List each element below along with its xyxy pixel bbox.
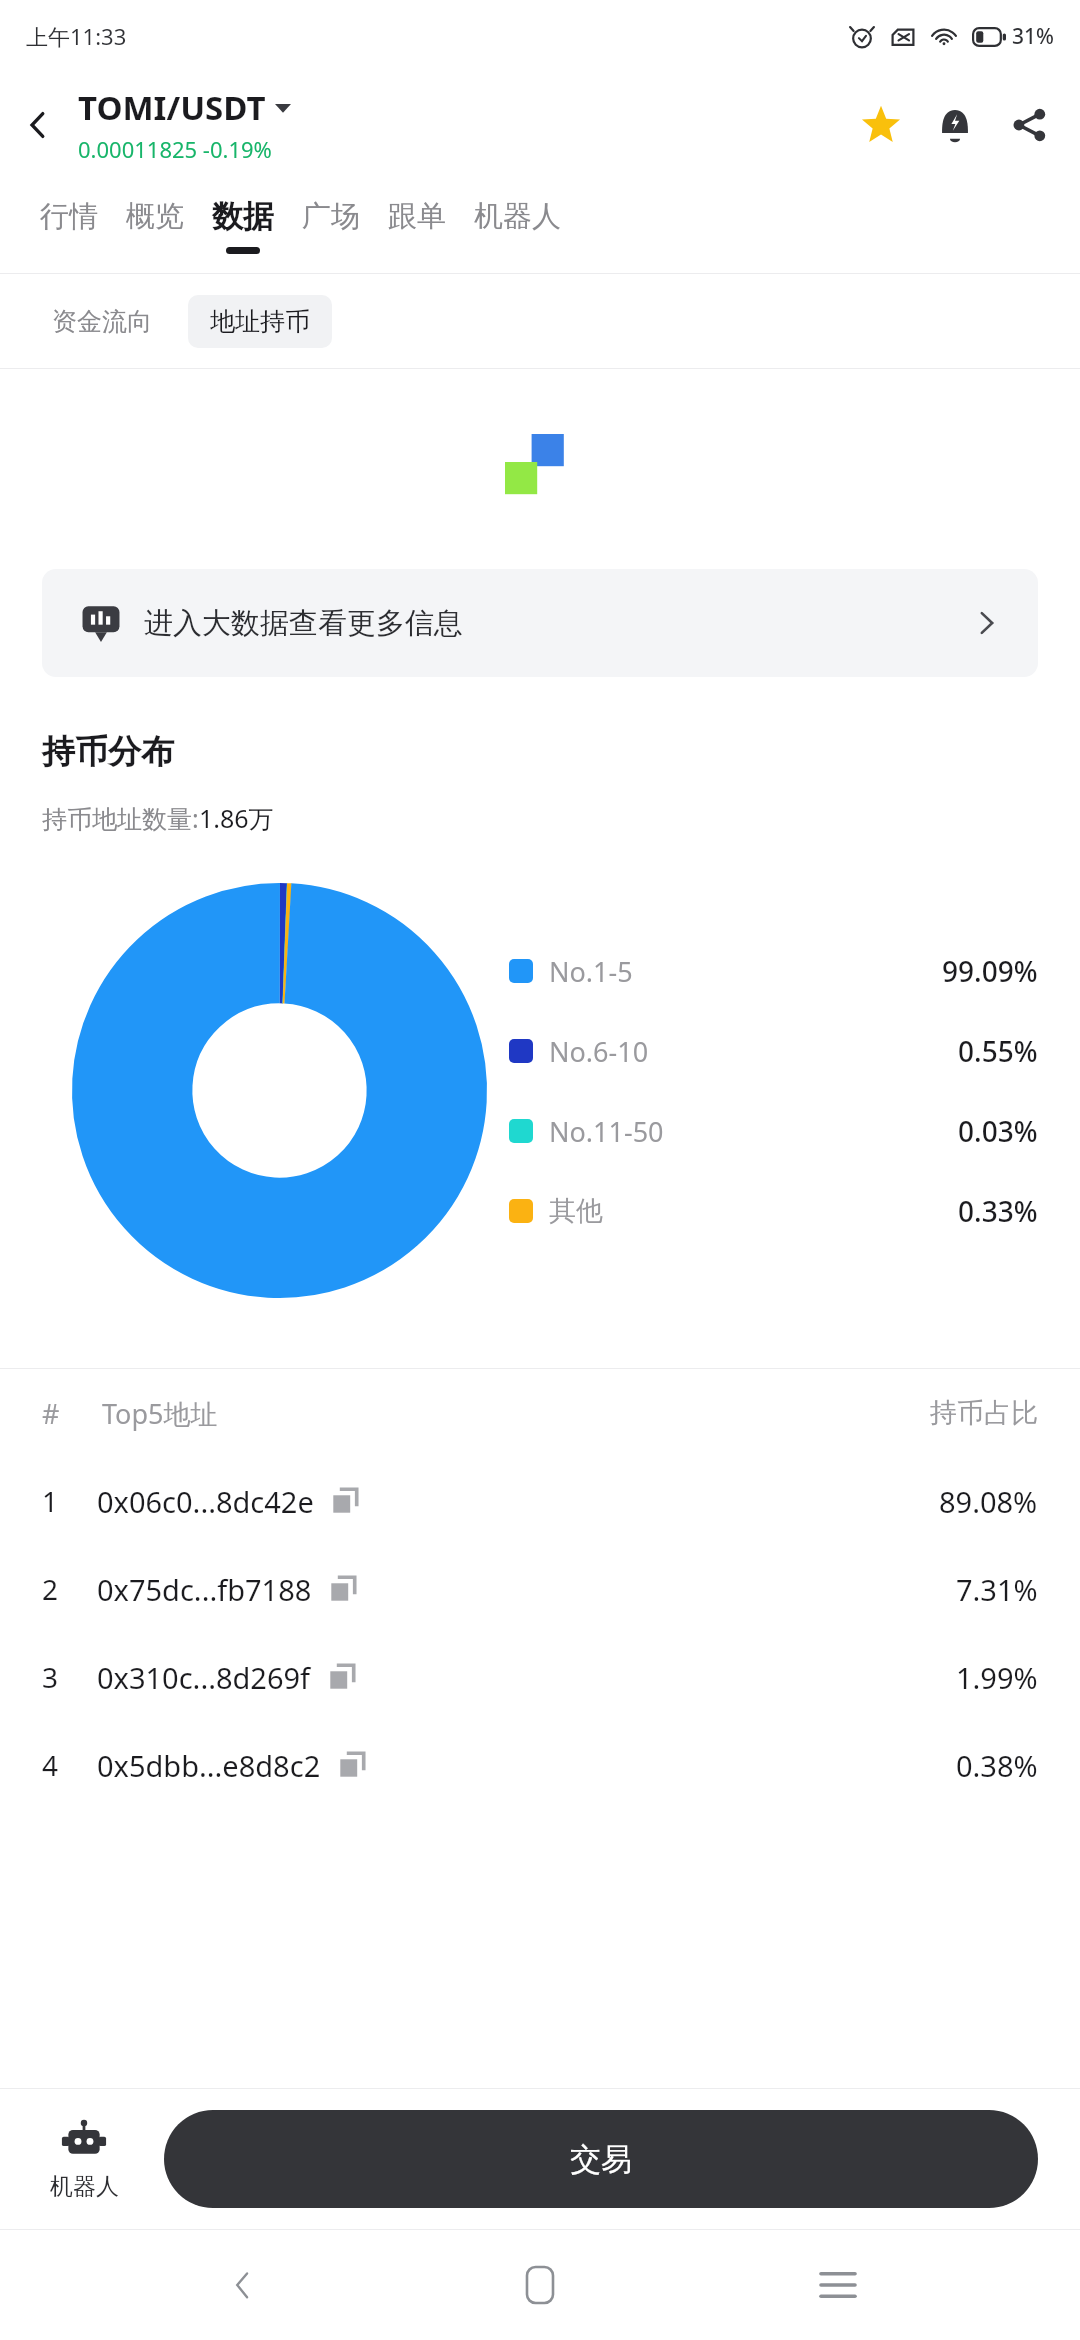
button[interactable]: Back [0,87,76,163]
staticText: No.6-10 [549,1033,649,1070]
staticText: 4 [42,1746,59,1784]
button[interactable]: 数据 [198,177,288,273]
staticText: 99.09% [942,952,1038,990]
button[interactable]: 1 [0,1457,1080,1545]
staticText: 89.08% [939,1482,1038,1521]
staticText: 2 [42,1570,59,1608]
button[interactable]: Favorite [844,88,918,162]
staticText: 0.03% [958,1112,1038,1150]
staticText: 行情 [40,198,98,235]
staticText: 0x310c...8d269f [97,1658,311,1697]
button[interactable]: 概览 [112,177,198,273]
staticText: 机器人 [474,198,561,235]
button[interactable]: Copy address [328,1484,362,1518]
button[interactable]: Price alert [918,88,992,162]
staticText: 0x06c0...8dc42e [97,1482,314,1521]
staticText: 广场 [302,198,360,235]
button[interactable]: 交易 [164,2110,1038,2208]
staticText: No.11-50 [549,1113,664,1150]
staticText: 资金流向 [52,306,152,337]
staticText: 1.99% [956,1658,1038,1697]
staticText: 7.31% [956,1570,1038,1609]
button[interactable]: 跟单 [374,177,460,273]
button[interactable]: Copy address [335,1748,369,1782]
button[interactable]: 3 [0,1633,1080,1721]
button[interactable]: 4 [0,1721,1080,1809]
button[interactable]: 资金流向 [42,296,162,347]
button[interactable]: Copy address [326,1572,360,1606]
button[interactable]: 广场 [288,177,374,273]
staticText: TOMI/USDT [78,85,266,130]
staticText: 上午11:33 [26,21,127,51]
button[interactable]: 机器人 [26,2089,142,2229]
button[interactable]: 2 [0,1545,1080,1633]
staticText: 持币分布 [42,731,174,773]
staticText: 0x75dc...fb7188 [97,1570,312,1609]
staticText: 0.33% [958,1192,1038,1230]
staticText: 其他 [549,1194,603,1228]
button[interactable]: Copy address [325,1660,359,1694]
button[interactable]: 行情 [26,177,112,273]
button[interactable]: 机器人 [460,177,575,273]
button[interactable]: Share [992,88,1066,162]
staticText: 0x5dbb...e8d8c2 [97,1746,321,1785]
button[interactable]: Home [485,2230,595,2340]
staticText: 0.38% [956,1746,1038,1785]
staticText: 机器人 [50,2172,119,2201]
staticText: 3 [42,1658,59,1696]
button[interactable]: Back [188,2230,298,2340]
staticText: 1.86万 [199,801,274,835]
staticText: 0.55% [958,1032,1038,1070]
staticText: # [42,1395,60,1432]
button[interactable]: 进入大数据查看更多信息 [42,569,1038,677]
staticText: 进入大数据查看更多信息 [144,605,463,642]
staticText: 0.00011825 -0.19% [78,134,272,164]
staticText: 数据 [212,197,274,236]
staticText: Top5地址 [102,1395,218,1432]
staticText: 持币占比 [930,1396,1038,1430]
staticText: No.1-5 [549,953,633,990]
button[interactable]: 地址持币 [188,295,332,348]
button[interactable]: Recents [783,2230,893,2340]
staticText: 交易 [570,2140,632,2179]
staticText: 31% [1012,22,1054,51]
staticText: 概览 [126,198,184,235]
staticText: 跟单 [388,198,446,235]
staticText: 持币地址数量: [42,801,199,835]
staticText: 地址持币 [210,306,310,337]
staticText: 1 [42,1482,59,1520]
